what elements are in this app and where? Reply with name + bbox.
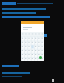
button[interactable]: Add event [21, 21, 44, 61]
button[interactable]: Add event [39, 56, 42, 59]
